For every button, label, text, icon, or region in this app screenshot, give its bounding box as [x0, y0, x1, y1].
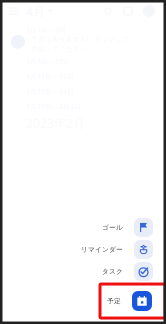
- button[interactable]: ゴール: [0, 218, 153, 237]
- button[interactable]: 予定: [100, 284, 165, 318]
- staticText: ゴール: [102, 223, 123, 232]
- staticText: 4月: [26, 3, 45, 19]
- button[interactable]: リマインダー: [0, 240, 153, 259]
- staticText: リマインダー: [81, 245, 123, 254]
- staticText: 予定: [107, 297, 121, 305]
- staticText: タスク: [102, 267, 123, 276]
- button[interactable]: タスク: [0, 262, 153, 281]
